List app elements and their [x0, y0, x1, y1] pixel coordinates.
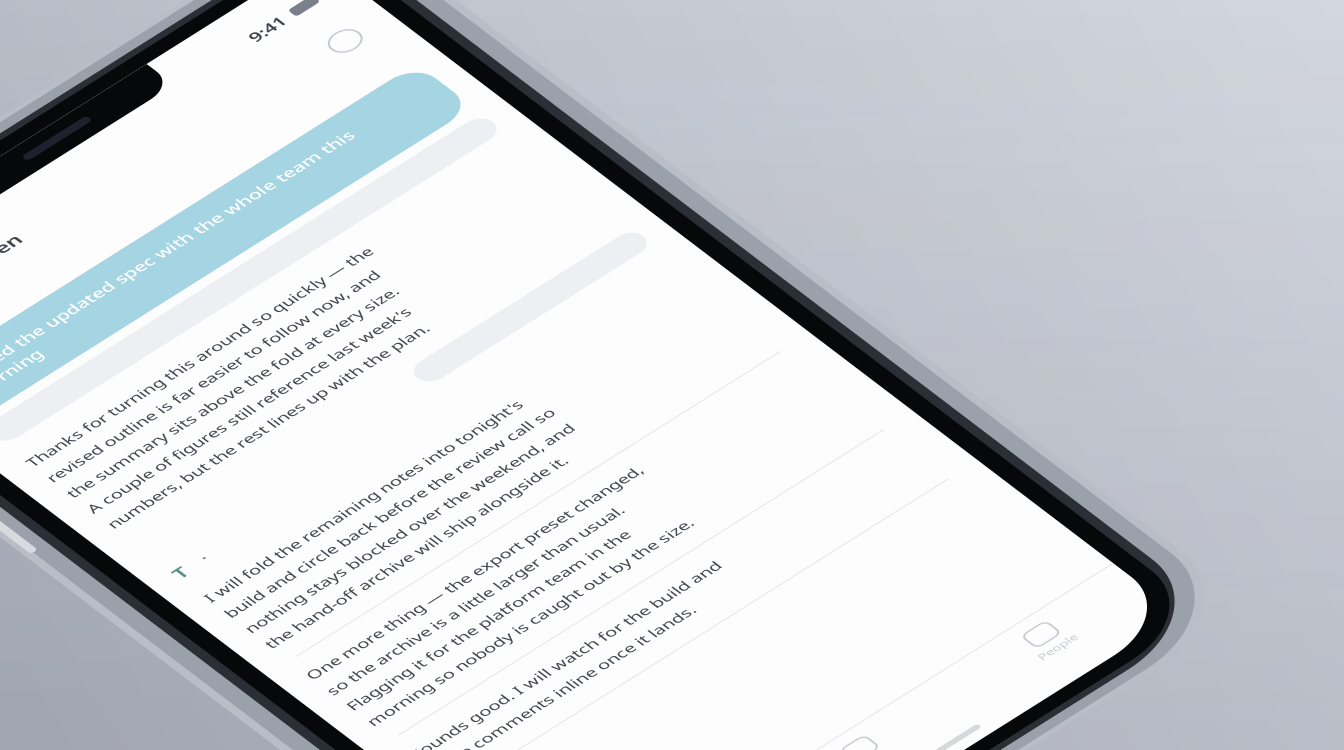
staticText: Shared the updated spec with the whole t… [54, 236, 562, 293]
staticText: Active 2m ago [64, 134, 179, 157]
staticText: Taylor Nguyen [64, 101, 232, 132]
button[interactable]: Shared the updated spec with the whole t… [28, 214, 672, 315]
staticText: the summary sits above the fold at every… [28, 470, 449, 496]
staticText: I will fold the remaining notes into ton… [28, 711, 432, 738]
button[interactable]: Back [30, 100, 64, 158]
staticText: A couple of figures still reference last… [28, 505, 439, 532]
staticText: build and circle back before the review … [28, 747, 447, 750]
staticText: numbers, but the rest lines up with the … [28, 541, 436, 567]
button[interactable]: Details [616, 102, 670, 156]
staticText: revised outline is far easier to follow … [28, 434, 451, 461]
staticText: Thanks for turning this around so quickl… [28, 399, 468, 425]
